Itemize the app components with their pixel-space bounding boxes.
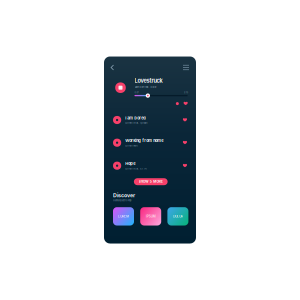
staticText: DOLOR [173, 214, 183, 218]
button[interactable]: Working from home [113, 138, 187, 147]
staticText: SHOW 5 MORE [138, 180, 163, 184]
staticText: IPSUM [146, 214, 156, 218]
staticText: Hope [125, 161, 135, 166]
button[interactable]: Pause [115, 82, 126, 93]
staticText: Lorem here [125, 144, 137, 147]
staticText: I am bored [125, 115, 146, 120]
button[interactable]: Favourite [184, 101, 188, 106]
staticText: Jane Doe feat. Dolor [135, 85, 157, 88]
staticText: Lovestruck [135, 77, 163, 84]
button[interactable]: Repeat [175, 101, 179, 106]
staticText: Lorem feat. Et Al [125, 167, 147, 170]
staticText: Lorem feat. Ipsum [125, 121, 147, 124]
button[interactable]: SHOW 5 MORE [134, 178, 168, 185]
button[interactable]: LOREM [113, 207, 134, 225]
staticText: LOREM [118, 214, 129, 218]
button[interactable]: Back [108, 63, 117, 72]
staticText: Working from home [125, 138, 163, 143]
staticText: Genre/Electro Pop [113, 199, 131, 202]
button[interactable]: DOLOR [167, 207, 188, 225]
staticText: Discover [113, 192, 135, 198]
button[interactable]: I am bored [113, 115, 187, 125]
button[interactable]: IPSUM [140, 207, 161, 225]
staticText: 0:07 [134, 91, 138, 94]
button[interactable]: Menu [181, 63, 190, 72]
button[interactable]: Hope [113, 161, 187, 170]
staticText: 3:15 [184, 91, 188, 94]
